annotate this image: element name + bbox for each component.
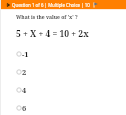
button[interactable]: -1 <box>0 45 126 63</box>
button[interactable]: Flag question <box>93 2 99 8</box>
staticText: -1 <box>22 49 29 59</box>
staticText: 6 <box>22 103 27 113</box>
staticText: 5 + X + 4 = 10 + 2x <box>16 28 89 40</box>
button[interactable]: 2 <box>0 63 126 81</box>
button[interactable]: 4 <box>0 81 126 99</box>
button[interactable]: Back <box>6 3 10 7</box>
staticText: 4 <box>22 85 27 95</box>
button[interactable]: 6 <box>0 99 126 115</box>
staticText: 2 <box>22 67 27 77</box>
staticText: What is the value of 'x' ? <box>16 14 78 21</box>
staticText: Question 1 of 6 | Multiple Choice | 10 <box>12 2 90 8</box>
